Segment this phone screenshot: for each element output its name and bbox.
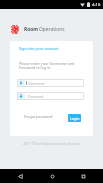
button[interactable]: Back [8,169,32,183]
staticText: Password [28,94,44,99]
staticText: Sign into your account [19,46,59,51]
button[interactable]: Home [40,169,64,183]
staticText: Login [70,116,80,121]
button[interactable]: Login [68,114,81,122]
staticText: Please enter your Username and Password … [19,61,75,70]
staticText: Room [24,26,39,33]
button[interactable]: Username [17,79,84,87]
staticText: 2017 © RoomOperations by Ecosata [0,141,103,146]
staticText: 4:16 [92,2,101,8]
button[interactable]: Forgot password [24,114,53,119]
button[interactable]: Recent apps [71,169,95,183]
button[interactable]: Password [17,92,84,100]
staticText: Forgot password [24,114,53,119]
staticText: Operations [39,26,65,33]
staticText: Username [28,81,45,86]
